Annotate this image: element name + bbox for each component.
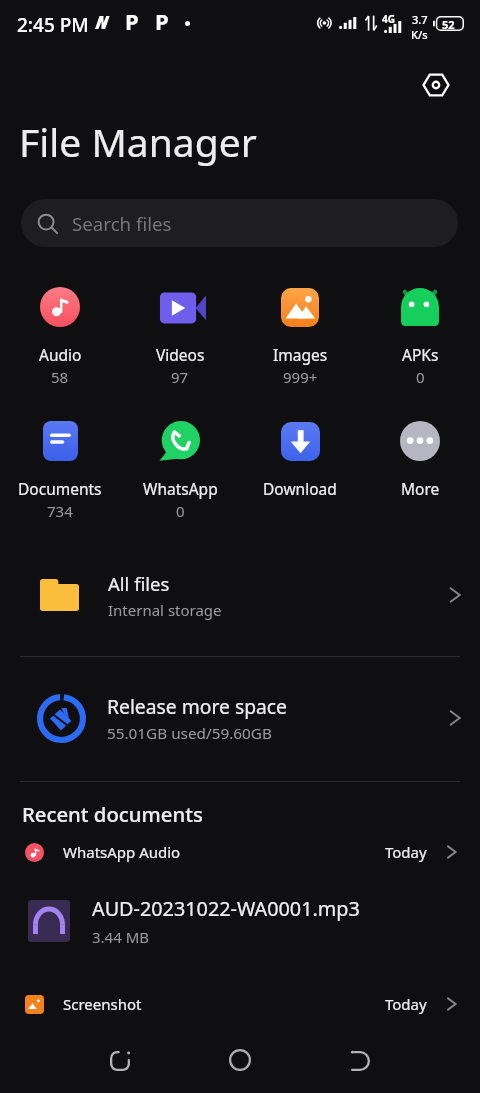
button[interactable]: Images [240, 287, 360, 387]
button[interactable]: Settings [416, 65, 456, 105]
staticText: More [401, 478, 440, 499]
staticText: 55.01GB used/59.60GB [107, 723, 272, 744]
other: Open [440, 842, 460, 862]
button[interactable]: All files [0, 560, 480, 630]
staticText: Download [263, 478, 337, 499]
staticText: 58 [51, 367, 69, 387]
staticText: Search files [72, 211, 172, 236]
button[interactable]: Documents [0, 421, 120, 521]
staticText: 4G [382, 12, 395, 26]
staticText: Screenshot [63, 994, 385, 1014]
button[interactable]: Home [216, 1036, 264, 1084]
button[interactable]: Screenshot [0, 988, 480, 1020]
staticText: P [155, 6, 169, 36]
other: Open [441, 706, 465, 730]
button[interactable]: Back [336, 1037, 384, 1085]
staticText: Audio [39, 344, 82, 365]
staticText: Today [385, 994, 427, 1014]
button[interactable]: APKs [360, 287, 480, 387]
button[interactable]: Audio [0, 287, 120, 387]
staticText: Recent documents [22, 800, 203, 828]
button[interactable]: Videos [120, 287, 240, 387]
button[interactable]: WhatsApp [120, 421, 240, 521]
button[interactable]: WhatsApp Audio [0, 835, 480, 869]
staticText: 52 [442, 17, 455, 32]
button[interactable]: Download [240, 421, 360, 499]
staticText: P [125, 6, 139, 36]
staticText: 999+ [283, 367, 318, 387]
staticText: Release more space [107, 693, 288, 719]
staticText: Documents [18, 478, 102, 499]
staticText: All files [108, 571, 170, 596]
staticText: APKs [402, 344, 439, 365]
staticText: 2:45 PM [17, 12, 89, 38]
staticText: WhatsApp [143, 478, 218, 499]
button[interactable]: More [360, 421, 480, 499]
staticText: Images [273, 344, 328, 365]
staticText: WhatsApp Audio [63, 842, 385, 862]
staticText: 0 [176, 501, 185, 521]
other: Open [441, 583, 465, 607]
staticText: 734 [47, 501, 73, 521]
staticText: Internal storage [108, 600, 222, 620]
staticText: Today [385, 842, 427, 862]
button[interactable]: AUD-20231022-WA0001.mp3 [0, 893, 480, 949]
staticText: 97 [171, 367, 189, 387]
other: Open [440, 994, 460, 1014]
staticText: File Manager [19, 115, 257, 168]
button[interactable]: Search files [21, 199, 458, 247]
button[interactable]: Release more space [0, 683, 480, 753]
staticText: 3.7 [412, 12, 428, 27]
staticText: 3.44 MB [92, 927, 150, 947]
staticText: K/s [411, 27, 428, 42]
staticText: AUD-20231022-WA0001.mp3 [92, 895, 360, 922]
button[interactable]: Recents [96, 1037, 144, 1085]
staticText: 0 [416, 367, 425, 387]
staticText: Videos [156, 344, 205, 365]
